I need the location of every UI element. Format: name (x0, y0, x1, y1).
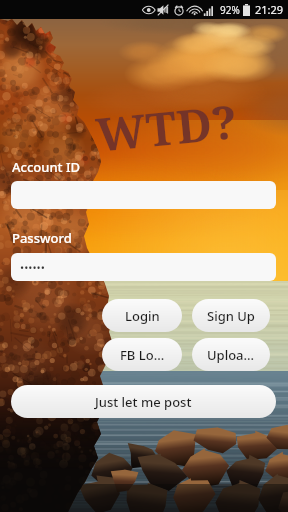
staticText: Sign Up (207, 307, 255, 325)
staticText: •••••• (20, 260, 45, 275)
staticText: 92% (220, 3, 240, 17)
staticText: Just let me post (95, 393, 192, 411)
staticText: Login (125, 307, 160, 325)
button[interactable]: •••••• (11, 253, 276, 281)
staticText: 21:29 (255, 2, 284, 17)
staticText: Account ID (12, 158, 80, 176)
button[interactable]: Sign Up (192, 299, 270, 332)
button[interactable]: FB Lo… (102, 338, 182, 371)
staticText: Password (12, 229, 72, 247)
button[interactable]: Just let me post (11, 385, 276, 418)
staticText: WTD? (93, 89, 241, 166)
button[interactable]: Uploa… (192, 338, 270, 371)
button[interactable]: Login (102, 299, 182, 332)
staticText: Uploa… (207, 346, 255, 364)
button[interactable] (11, 181, 276, 209)
staticText: FB Lo… (120, 346, 165, 364)
